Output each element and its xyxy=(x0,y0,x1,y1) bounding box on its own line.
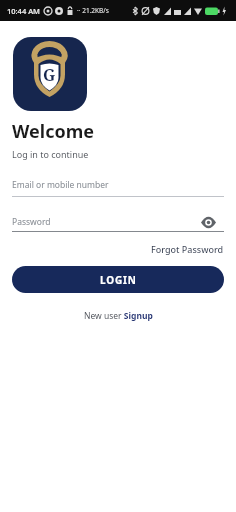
staticText: Email or mobile number xyxy=(12,179,109,191)
staticText: Welcome xyxy=(12,119,94,144)
button[interactable]: Forgot Password xyxy=(151,243,224,255)
staticText: ·· 21.2KB/s xyxy=(77,6,109,15)
staticText: Log in to continue xyxy=(12,148,89,160)
button[interactable]: LOGIN xyxy=(12,266,224,293)
staticText: 10:44 AM xyxy=(7,6,40,16)
button[interactable]: Email or mobile number xyxy=(12,179,224,197)
button[interactable]: Password xyxy=(12,216,224,232)
staticText: G xyxy=(43,64,56,86)
button[interactable]: New user Signup xyxy=(84,310,153,322)
staticText: LOGIN xyxy=(100,273,137,287)
staticText: Password xyxy=(12,216,51,228)
button[interactable] xyxy=(201,217,216,228)
